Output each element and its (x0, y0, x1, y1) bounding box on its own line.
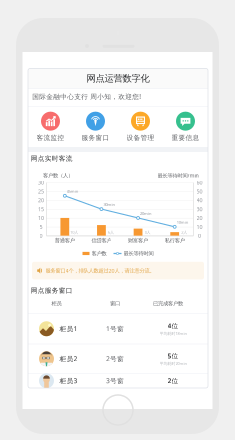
staticText: 服务窗口 (81, 134, 109, 142)
staticText: 0 (198, 232, 201, 239)
staticText: 最长等待时间 (123, 250, 153, 257)
staticText: 25 (38, 188, 44, 195)
staticText: 6人 (108, 230, 114, 235)
staticText: 柜员 (51, 300, 61, 307)
staticText: 10 (196, 223, 202, 230)
staticText: 私行客户 (165, 237, 185, 244)
staticText: 10min (177, 220, 188, 225)
staticText: 3号窗 (106, 376, 124, 385)
staticText: 60 (196, 179, 202, 186)
staticText: 柜员1 (59, 324, 77, 333)
staticText: 5 (39, 223, 42, 230)
staticText: 10人 (70, 230, 78, 235)
staticText: 客户数 (91, 250, 106, 257)
staticText: 服务窗口4个，排队人数超过20人，请注意分流。 (45, 267, 154, 274)
staticText: 柜员3 (59, 376, 77, 385)
button[interactable]: 客流监控 (28, 107, 73, 147)
staticText: 窗口 (110, 300, 120, 307)
staticText: 财富客户 (128, 237, 148, 244)
button[interactable]: 服务窗口 (73, 107, 118, 147)
staticText: 0 (39, 232, 42, 239)
staticText: 2位 (167, 376, 178, 385)
staticText: 4人 (145, 230, 151, 235)
staticText: 网点运营数字化 (86, 73, 149, 84)
staticText: 设备管理 (126, 134, 154, 142)
button[interactable]: 网点运营数字化 (28, 68, 208, 88)
staticText: 网点服务窗口 (31, 286, 73, 295)
staticText: 重要信息 (171, 134, 199, 142)
staticText: 45min (67, 188, 78, 194)
staticText: 20 (196, 214, 202, 221)
staticText: 20min (140, 211, 151, 216)
staticText: 30min (103, 202, 114, 207)
staticText: 信贷客户 (91, 237, 111, 244)
staticText: 国际金融中心支行 周小知，欢迎您! (32, 92, 141, 101)
staticText: 客户数（人） (43, 172, 73, 179)
staticText: 已完成客户数 (153, 300, 183, 307)
staticText: 网点实时客流 (31, 154, 73, 163)
staticText: 4位 (167, 321, 178, 330)
staticText: 40 (196, 197, 202, 204)
staticText: 柜员2 (59, 354, 77, 363)
staticText: 10 (38, 214, 44, 221)
staticText: 2人 (181, 230, 187, 235)
staticText: 1号窗 (106, 324, 124, 333)
staticText: 30 (196, 206, 202, 213)
staticText: 普通客户 (55, 237, 75, 244)
button[interactable]: 设备管理 (118, 107, 163, 147)
staticText: 5位 (167, 351, 178, 360)
staticText: 2号窗 (106, 354, 124, 363)
staticText: 客流监控 (36, 134, 64, 142)
staticText: 平均耗时18min (159, 331, 186, 336)
button[interactable]: Home (103, 395, 133, 425)
staticText: 平均耗时20min (159, 361, 186, 366)
button[interactable]: 柜员3 (28, 373, 208, 388)
button[interactable]: 柜员1 (28, 313, 208, 344)
staticText: 50 (196, 188, 202, 195)
staticText: 30 (38, 179, 44, 186)
staticText: 15 (38, 206, 44, 213)
staticText: 20 (38, 197, 44, 204)
button[interactable]: 重要信息 (163, 107, 208, 147)
staticText: 最长等待时间/min (157, 172, 198, 179)
button[interactable]: 柜员2 (28, 344, 208, 373)
